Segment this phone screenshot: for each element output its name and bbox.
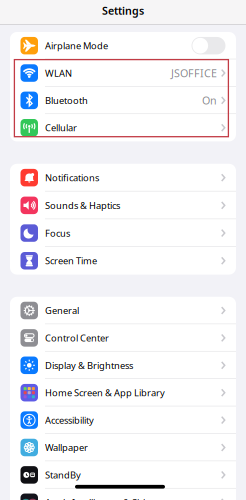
staticText: Cellular <box>45 121 77 134</box>
staticText: Bluetooth <box>45 94 88 107</box>
staticText: Accessibility <box>45 414 94 426</box>
staticText: Screen Time <box>45 255 97 267</box>
button[interactable]: Cellular <box>10 114 236 141</box>
staticText: StandBy <box>45 469 81 481</box>
button[interactable]: Wallpaper <box>10 434 236 461</box>
staticText: On <box>202 93 217 107</box>
button[interactable]: Focus <box>10 219 236 247</box>
button[interactable]: Sounds & Haptics <box>10 191 236 219</box>
staticText: Sounds & Haptics <box>45 199 120 212</box>
button[interactable]: WLAN <box>10 59 236 87</box>
button[interactable]: Airplane Mode <box>10 32 236 59</box>
staticText: Apple Intelligence & Siri <box>45 496 145 500</box>
staticText: Display & Brightness <box>45 359 133 371</box>
staticText: Settings <box>102 4 144 18</box>
button[interactable]: Accessibility <box>10 406 236 434</box>
staticText: Airplane Mode <box>45 39 108 52</box>
button[interactable]: Bluetooth <box>10 87 236 114</box>
button[interactable]: Screen Time <box>10 247 236 275</box>
staticText: WLAN <box>45 67 72 79</box>
staticText: General <box>45 304 79 317</box>
button[interactable]: Control Center <box>10 324 236 352</box>
button[interactable]: StandBy <box>10 461 236 489</box>
button[interactable]: Notifications <box>10 164 236 191</box>
button[interactable]: General <box>10 297 236 324</box>
staticText: Notifications <box>45 171 99 184</box>
staticText: Control Center <box>45 332 109 344</box>
staticText: Focus <box>45 227 70 239</box>
staticText: Home Screen & App Library <box>45 386 165 399</box>
button[interactable]: Apple Intelligence & Siri <box>10 489 236 500</box>
staticText: Wallpaper <box>45 441 88 454</box>
staticText: JSOFFICE <box>171 66 217 80</box>
button[interactable]: Home Screen & App Library <box>10 379 236 406</box>
button[interactable]: Display & Brightness <box>10 352 236 379</box>
